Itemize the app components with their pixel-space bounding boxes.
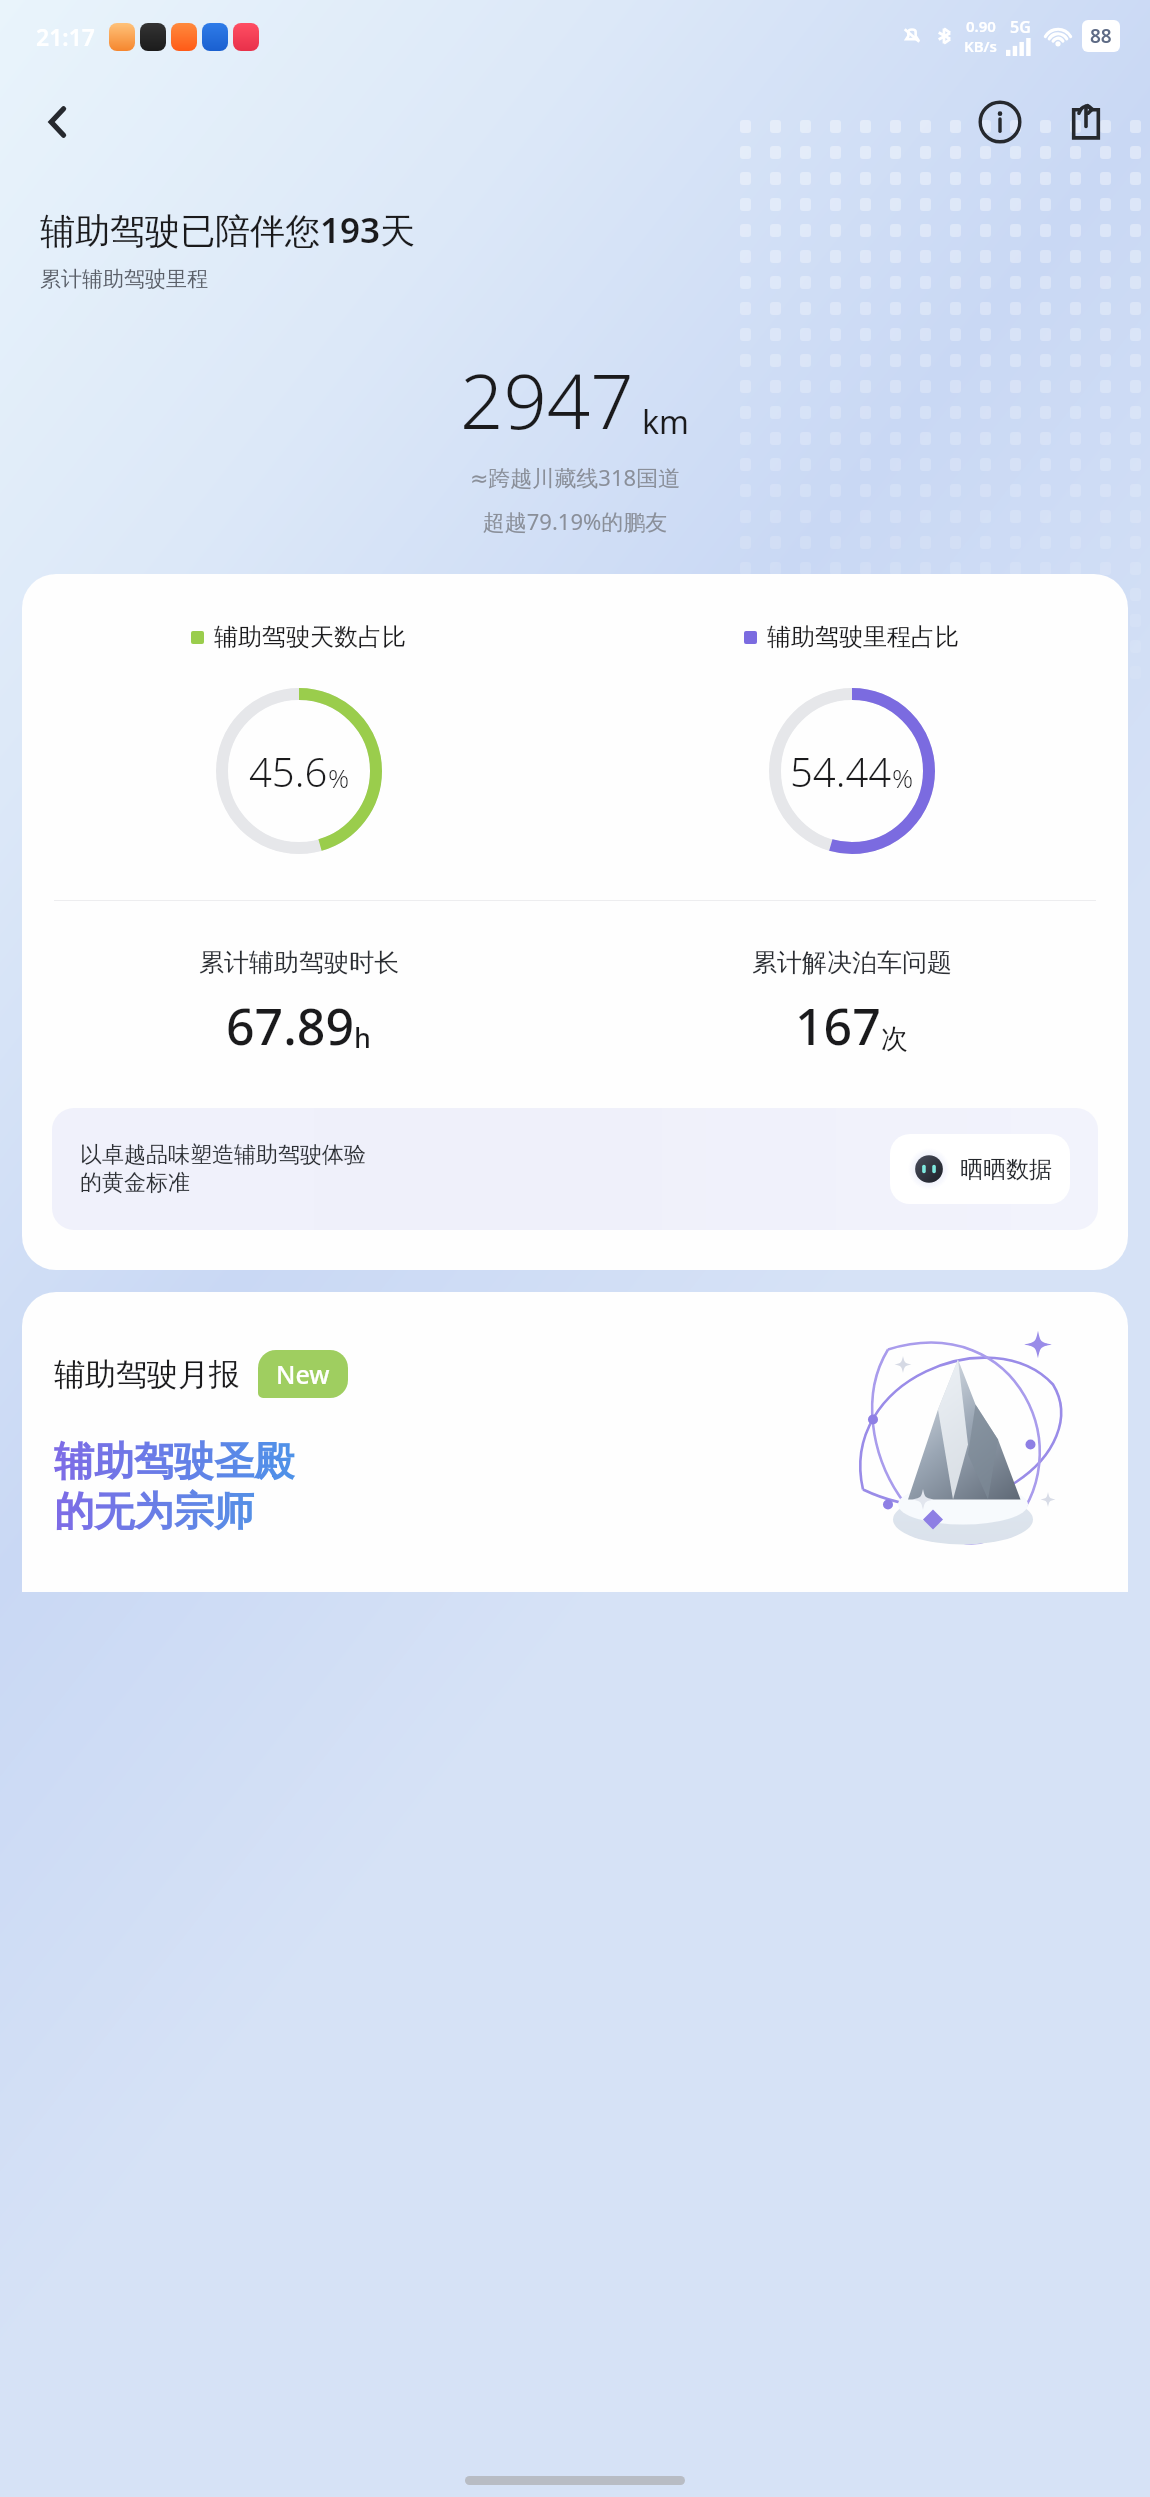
staticText: 5G <box>1010 16 1031 38</box>
staticText: 以卓越品味塑造辅助驾驶体验 <box>80 1141 366 1169</box>
staticText: 累计解决泊车问题 <box>752 947 952 978</box>
staticText: 辅助驾驶天数占比 <box>214 622 406 652</box>
staticText: 54.44 <box>790 744 892 798</box>
staticText: 累计辅助驾驶时长 <box>199 947 399 978</box>
staticText: 的黄金标准 <box>80 1169 190 1197</box>
staticText: 21:17 <box>36 21 95 52</box>
staticText: ≈跨越川藏线318国道 <box>0 462 1150 492</box>
button[interactable]: Info <box>966 88 1034 156</box>
staticText: 的无为宗师 <box>54 1486 254 1536</box>
staticText: 辅助驾驶里程占比 <box>767 622 959 652</box>
staticText: 45.6 <box>249 744 328 798</box>
staticText: 2947 <box>460 348 634 452</box>
button[interactable]: 以卓越品味塑造辅助驾驶体验 <box>52 1108 1098 1230</box>
staticText: 167 <box>795 992 881 1060</box>
button[interactable]: Share <box>1052 88 1120 156</box>
staticText: KB/s <box>964 36 997 56</box>
staticText: 辅助驾驶已陪伴您193天 <box>40 206 416 254</box>
button[interactable]: Back <box>24 88 92 156</box>
staticText: 67.89 <box>226 992 354 1060</box>
staticText: 累计辅助驾驶里程 <box>40 266 208 292</box>
staticText: New <box>276 1357 330 1391</box>
staticText: 晒晒数据 <box>960 1155 1052 1184</box>
staticText: 辅助驾驶圣殿 <box>54 1436 294 1486</box>
staticText: 超越79.19%的鹏友 <box>0 506 1150 536</box>
staticText: 88 <box>1090 23 1112 49</box>
staticText: km <box>642 400 690 444</box>
staticText: % <box>328 760 350 795</box>
staticText: % <box>892 760 914 795</box>
button[interactable]: 辅助驾驶月报 <box>22 1292 1128 1592</box>
staticText: 次 <box>881 1022 908 1056</box>
button[interactable]: 晒晒数据 <box>890 1134 1070 1204</box>
staticText: 辅助驾驶月报 <box>54 1355 240 1394</box>
staticText: h <box>354 1019 371 1056</box>
staticText: 0.90 <box>966 16 996 36</box>
